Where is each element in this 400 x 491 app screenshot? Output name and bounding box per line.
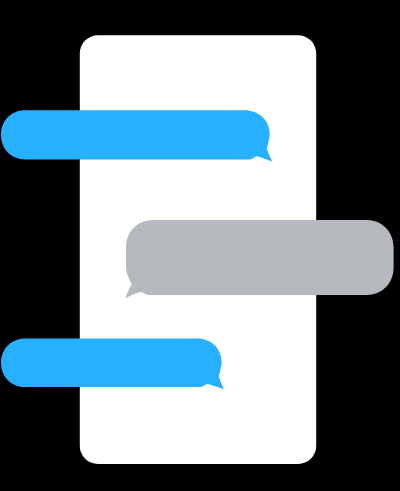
- button[interactable]: Phone: [79, 35, 318, 466]
- button[interactable]: Sent message: [1, 338, 228, 393]
- button[interactable]: Received message: [122, 220, 396, 301]
- button[interactable]: Sent message: [1, 110, 276, 165]
